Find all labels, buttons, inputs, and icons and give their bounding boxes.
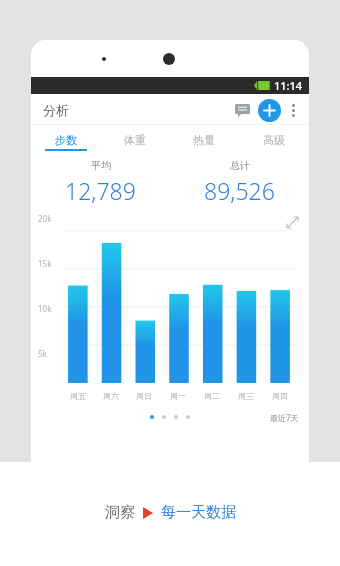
staticText: 11:14 xyxy=(274,78,303,93)
button[interactable]: More options xyxy=(282,99,304,121)
staticText: 周四 xyxy=(272,391,288,401)
staticText: 周一 xyxy=(170,391,186,401)
staticText: 5k xyxy=(38,348,47,359)
staticText: 分析 xyxy=(43,102,69,118)
staticText: 周五 xyxy=(70,391,86,401)
staticText: 总计 xyxy=(230,159,250,172)
staticText: 热量 xyxy=(193,133,215,147)
button[interactable]: 高级 xyxy=(239,125,309,154)
staticText: 周六 xyxy=(103,391,119,401)
staticText: 最近7天 xyxy=(270,412,299,423)
staticText: 步数 xyxy=(55,133,77,147)
staticText: 体重 xyxy=(124,133,146,147)
staticText: 每一天数据 xyxy=(161,503,236,522)
button[interactable]: 步数 xyxy=(31,125,100,154)
staticText: 20k xyxy=(38,213,52,224)
staticText: 12,789 xyxy=(65,175,136,206)
button[interactable]: 热量 xyxy=(169,125,239,154)
button[interactable]: Add xyxy=(258,99,281,122)
button[interactable]: Messages xyxy=(229,97,255,123)
staticText: 周三 xyxy=(238,391,254,401)
staticText: 89,526 xyxy=(204,175,275,206)
staticText: 15k xyxy=(38,258,52,269)
staticText: 高级 xyxy=(263,133,285,147)
staticText: 洞察 xyxy=(105,503,135,522)
button[interactable]: 体重 xyxy=(100,125,169,154)
staticText: 平均 xyxy=(91,159,111,172)
staticText: 10k xyxy=(38,303,52,314)
button[interactable]: Expand chart xyxy=(283,213,301,231)
staticText: 周二 xyxy=(204,391,220,401)
staticText: 周日 xyxy=(136,391,152,401)
